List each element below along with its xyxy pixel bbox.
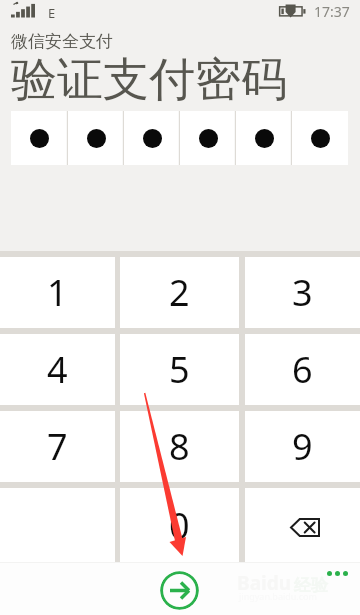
button[interactable]: More options — [327, 571, 348, 576]
staticText: 验证支付密码 — [11, 51, 287, 109]
staticText: 17:37 — [314, 2, 350, 21]
button[interactable]: Backspace — [245, 488, 360, 562]
button[interactable]: 5 — [120, 334, 239, 405]
button[interactable]: 8 — [120, 411, 239, 482]
button[interactable]: 7 — [0, 411, 115, 482]
staticText: 1 — [47, 268, 68, 317]
button[interactable]: 6 — [245, 334, 360, 405]
staticText: 3 — [292, 268, 313, 317]
button[interactable]: 3 — [245, 257, 360, 328]
button[interactable]: 1 — [0, 257, 115, 328]
button[interactable]: 0 — [120, 488, 239, 562]
staticText: E — [48, 4, 56, 22]
button[interactable]: 4 — [0, 334, 115, 405]
staticText: 9 — [292, 422, 313, 471]
staticText: 经验 — [294, 575, 328, 596]
button[interactable]: 2 — [120, 257, 239, 328]
staticText: 5 — [169, 345, 190, 394]
staticText: 2 — [169, 268, 190, 317]
staticText: 8 — [169, 422, 190, 471]
staticText: 4 — [47, 345, 68, 394]
staticText: 0 — [169, 501, 190, 550]
other: Backspace — [290, 518, 320, 537]
staticText: 微信安全支付 — [11, 31, 113, 52]
button[interactable]: 9 — [245, 411, 360, 482]
button[interactable]: Confirm — [160, 571, 199, 610]
staticText: 6 — [292, 345, 313, 394]
staticText: 7 — [47, 422, 68, 471]
